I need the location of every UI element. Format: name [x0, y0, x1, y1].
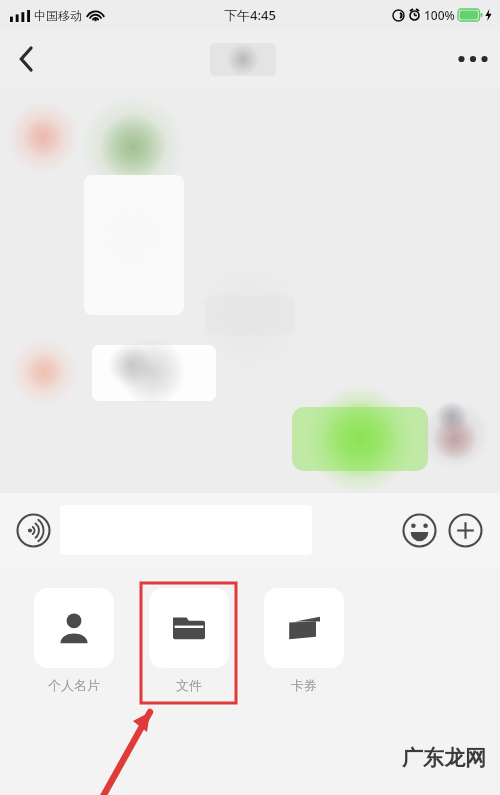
- button[interactable]: More functions: [442, 507, 488, 553]
- button[interactable]: Emoji: [396, 507, 442, 553]
- button[interactable]: 卡券: [264, 588, 344, 693]
- staticText: 个人名片: [48, 677, 100, 693]
- staticText: 文件: [176, 677, 202, 693]
- button[interactable]: 个人名片: [34, 588, 114, 693]
- staticText: 100%: [424, 7, 455, 23]
- staticText: 卡券: [291, 677, 317, 693]
- button[interactable]: More options: [446, 32, 500, 86]
- staticText: 广东龙网: [402, 745, 486, 771]
- staticText: 下午4:45: [224, 6, 276, 24]
- button[interactable]: Back: [0, 33, 52, 85]
- staticText: 中国移动: [34, 8, 82, 23]
- button[interactable]: 文件: [149, 588, 229, 693]
- button[interactable]: Voice input: [10, 507, 56, 553]
